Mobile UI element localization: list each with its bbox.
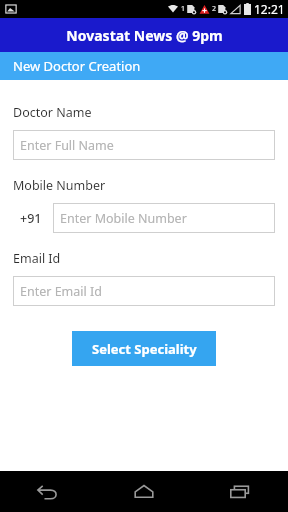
button[interactable]: Home — [96, 471, 192, 512]
button[interactable]: Enter Full Name — [13, 130, 275, 160]
staticText: 2 — [212, 4, 217, 14]
staticText: New Doctor Creation — [13, 57, 141, 75]
staticText: Enter Full Name — [20, 137, 114, 154]
button[interactable]: Back — [0, 471, 96, 512]
staticText: 12:21 — [254, 1, 285, 17]
staticText: Enter Mobile Number — [60, 210, 187, 227]
staticText: Mobile Number — [13, 177, 106, 194]
button[interactable]: Select Speciality — [72, 331, 216, 366]
button[interactable]: Enter Mobile Number — [53, 203, 275, 233]
button[interactable]: New Doctor Creation — [0, 52, 288, 80]
staticText: Select Speciality — [92, 340, 197, 358]
button[interactable]: Enter Email Id — [13, 276, 275, 306]
staticText: 1 — [181, 4, 186, 14]
staticText: Novastat News @ 9pm — [66, 26, 223, 45]
staticText: Enter Email Id — [20, 283, 102, 300]
staticText: +91 — [20, 210, 42, 227]
staticText: Email Id — [13, 250, 61, 267]
staticText: Doctor Name — [13, 104, 92, 121]
button[interactable]: Recent apps — [192, 471, 288, 512]
